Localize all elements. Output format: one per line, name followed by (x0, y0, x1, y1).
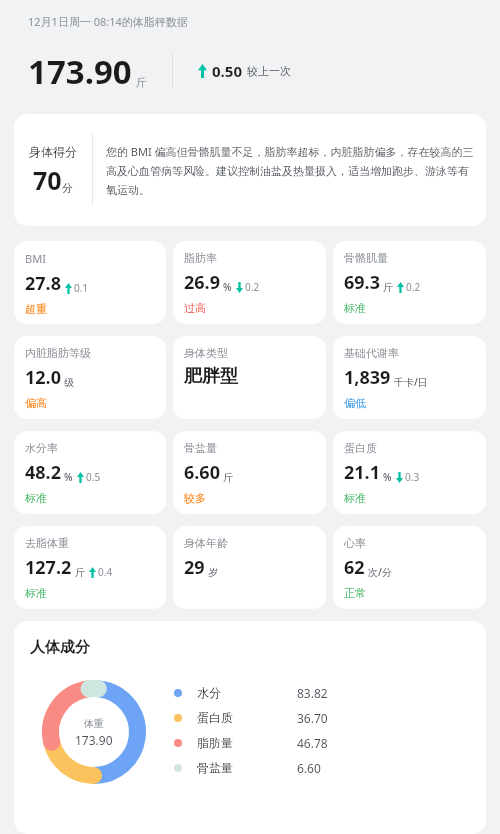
staticText: 水分率 (25, 441, 58, 455)
button[interactable]: 身体年龄 (173, 526, 326, 609)
staticText: 斤 (136, 75, 147, 89)
button[interactable]: 水分率 (14, 431, 166, 514)
staticText: 脂肪量 (197, 735, 297, 750)
staticText: 0.5 (86, 470, 101, 484)
staticText: 去脂体重 (25, 536, 69, 550)
staticText: 0.2 (406, 280, 421, 294)
staticText: 斤 (75, 566, 85, 579)
staticText: 偏低 (344, 396, 366, 410)
button[interactable]: 心率 (333, 526, 486, 609)
staticText: 人体成分 (30, 638, 90, 657)
staticText: 0.4 (98, 565, 113, 579)
staticText: 次/分 (368, 565, 392, 579)
button[interactable]: 骨骼肌量 (333, 241, 486, 324)
staticText: 26.9 (184, 270, 220, 295)
staticText: 6.60 (297, 760, 321, 776)
button[interactable]: 人体成分 (14, 621, 486, 834)
staticText: 标准 (344, 301, 366, 315)
staticText: 偏高 (25, 396, 47, 410)
staticText: 千卡/日 (394, 375, 428, 389)
staticText: 分 (62, 181, 73, 195)
staticText: 骨盐量 (184, 441, 217, 455)
button[interactable]: 身体类型 (173, 336, 326, 419)
staticText: 斤 (223, 471, 233, 484)
staticText: 蛋白质 (344, 441, 377, 455)
staticText: 69.3 (344, 270, 380, 295)
staticText: 肥胖型 (184, 365, 238, 388)
staticText: 水分 (197, 685, 297, 700)
button[interactable]: 蛋白质 (333, 431, 486, 514)
staticText: 岁 (208, 566, 218, 579)
staticText: 超重 (25, 302, 47, 316)
staticText: % (64, 470, 73, 484)
staticText: 6.60 (184, 460, 220, 485)
staticText: 较上一次 (247, 64, 291, 78)
staticText: 骨盐量 (197, 760, 297, 775)
staticText: 心率 (344, 536, 366, 550)
staticText: 173.90 (28, 49, 132, 93)
staticText: 脂肪率 (184, 251, 217, 265)
staticText: 12.0 (25, 365, 61, 390)
button[interactable]: BMI (14, 241, 166, 324)
staticText: 46.78 (297, 735, 328, 751)
staticText: 身体得分 (29, 144, 77, 159)
staticText: 标准 (344, 491, 366, 505)
staticText: 过高 (184, 301, 206, 315)
staticText: 12月1日周一 08:14的体脂秤数据 (28, 14, 188, 29)
staticText: 身体类型 (184, 346, 228, 360)
staticText: 83.82 (297, 685, 328, 701)
button[interactable]: 脂肪率 (173, 241, 326, 324)
staticText: 29 (184, 555, 205, 580)
staticText: 较多 (184, 491, 206, 505)
staticText: 62 (344, 555, 365, 580)
staticText: 标准 (25, 491, 47, 505)
staticText: 0.3 (405, 470, 420, 484)
staticText: 0.1 (74, 281, 89, 295)
staticText: 21.1 (344, 460, 380, 485)
staticText: BMI (25, 251, 46, 266)
staticText: 身体年龄 (184, 536, 228, 550)
staticText: 27.8 (25, 271, 61, 296)
staticText: 0.2 (245, 280, 260, 294)
staticText: % (383, 470, 392, 484)
button[interactable]: 去脂体重 (14, 526, 166, 609)
staticText: 0.50 (212, 61, 242, 81)
staticText: 48.2 (25, 460, 61, 485)
staticText: 1,839 (344, 365, 391, 390)
staticText: 标准 (25, 586, 47, 600)
staticText: 基础代谢率 (344, 346, 399, 360)
staticText: 正常 (344, 586, 366, 600)
staticText: 36.70 (297, 710, 328, 726)
staticText: 骨骼肌量 (344, 251, 388, 265)
staticText: % (223, 280, 232, 294)
staticText: 127.2 (25, 555, 72, 580)
staticText: 体重 (84, 717, 104, 730)
staticText: 蛋白质 (197, 710, 297, 725)
staticText: 内脏脂肪等级 (25, 346, 91, 360)
button[interactable]: 内脏脂肪等级 (14, 336, 166, 419)
staticText: 斤 (383, 281, 393, 294)
staticText: 173.90 (75, 732, 113, 748)
button[interactable]: 骨盐量 (173, 431, 326, 514)
staticText: 70 (33, 163, 62, 197)
staticText: 您的 BMI 偏高但骨骼肌量不足，脂肪率超标，内脏脂肪偏多，存在较高的三高及心血… (106, 144, 474, 197)
staticText: 级 (64, 376, 74, 389)
button[interactable]: 身体得分 (14, 114, 486, 226)
button[interactable]: 基础代谢率 (333, 336, 486, 419)
